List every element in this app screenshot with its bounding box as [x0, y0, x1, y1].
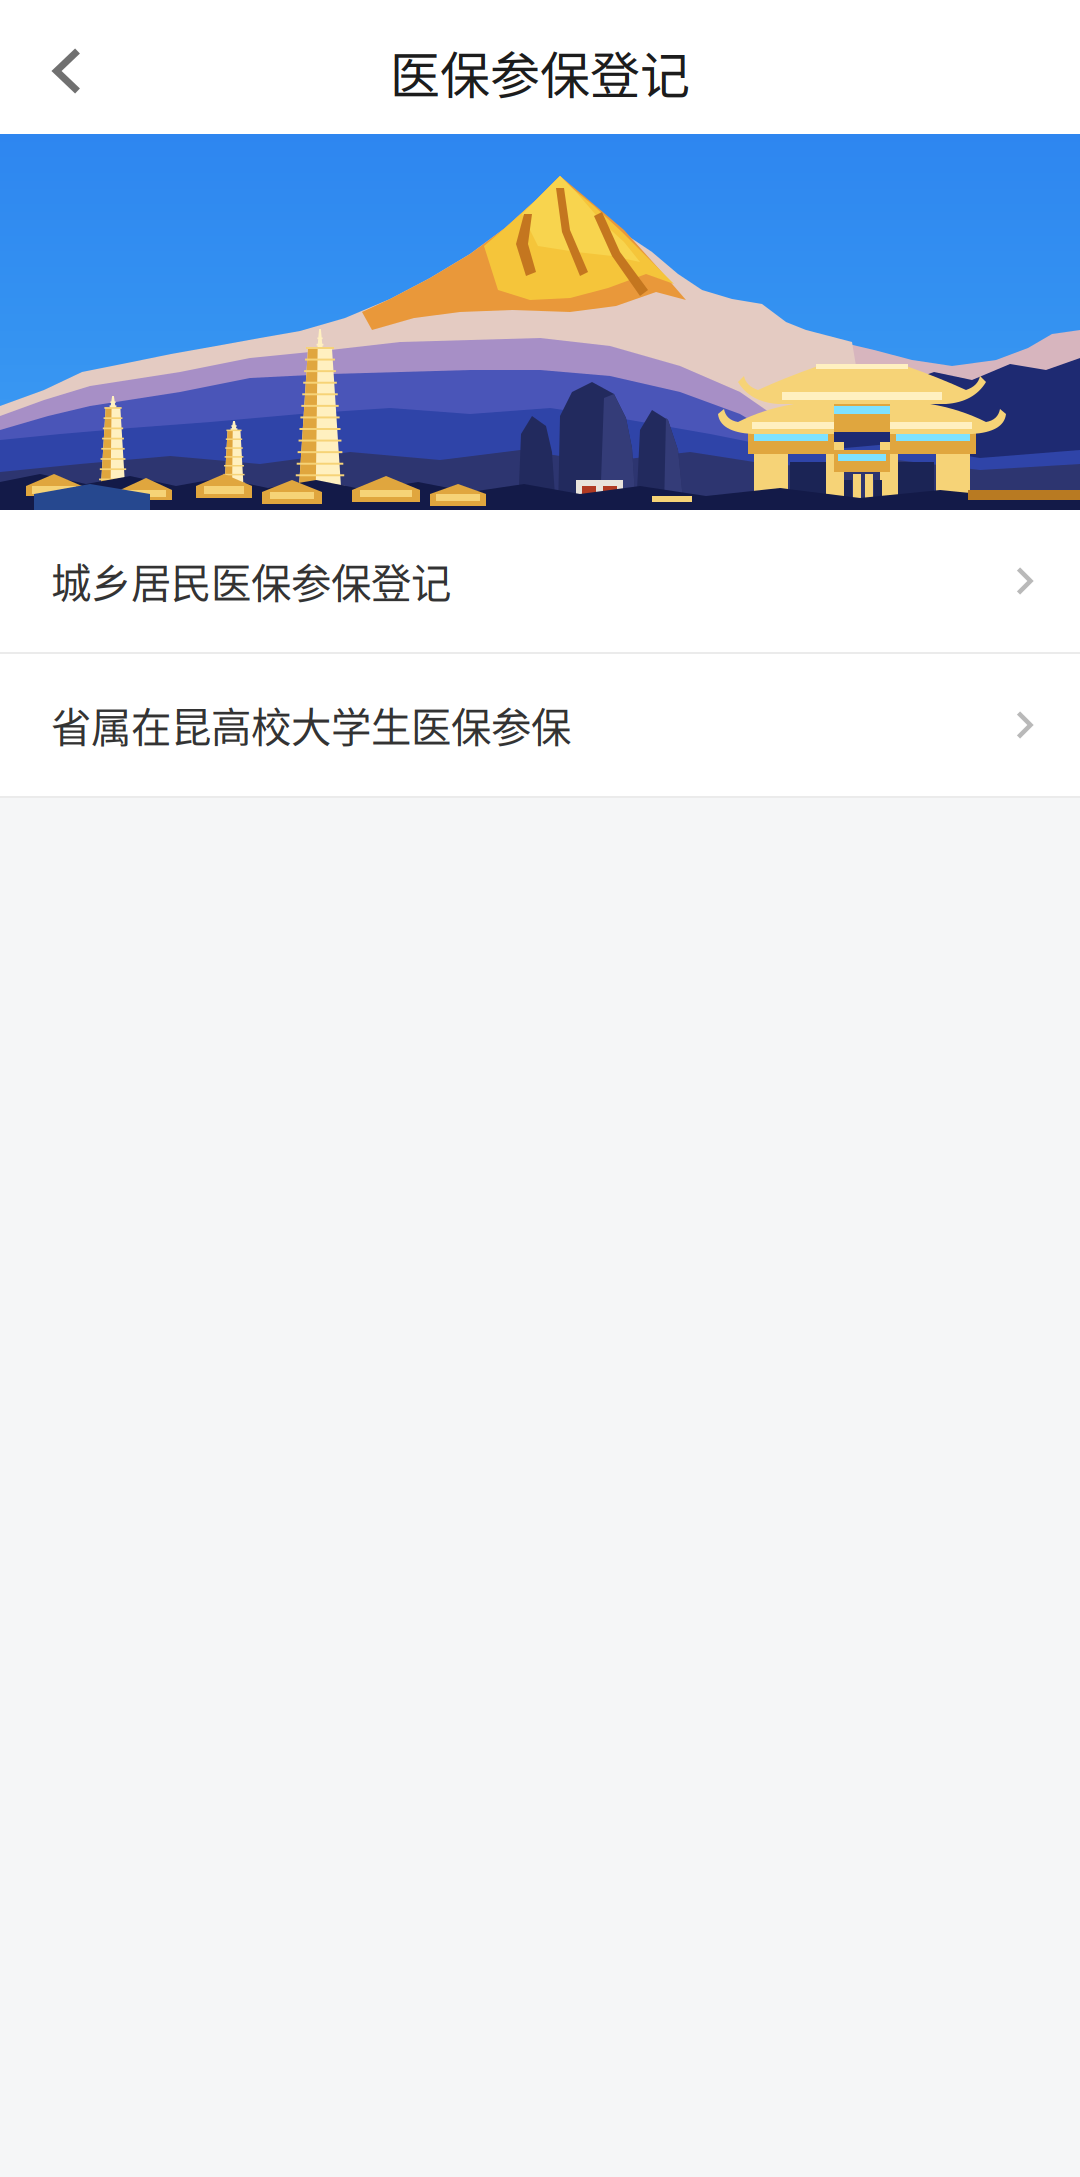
button[interactable]: 省属在昆高校大学生医保参保 — [0, 654, 1080, 796]
button[interactable]: Back — [0, 0, 122, 134]
button[interactable]: 城乡居民医保参保登记 — [0, 510, 1080, 652]
staticText: 省属在昆高校大学生医保参保 — [51, 696, 571, 754]
staticText: 医保参保登记 — [390, 36, 690, 108]
staticText: 城乡居民医保参保登记 — [51, 552, 451, 610]
